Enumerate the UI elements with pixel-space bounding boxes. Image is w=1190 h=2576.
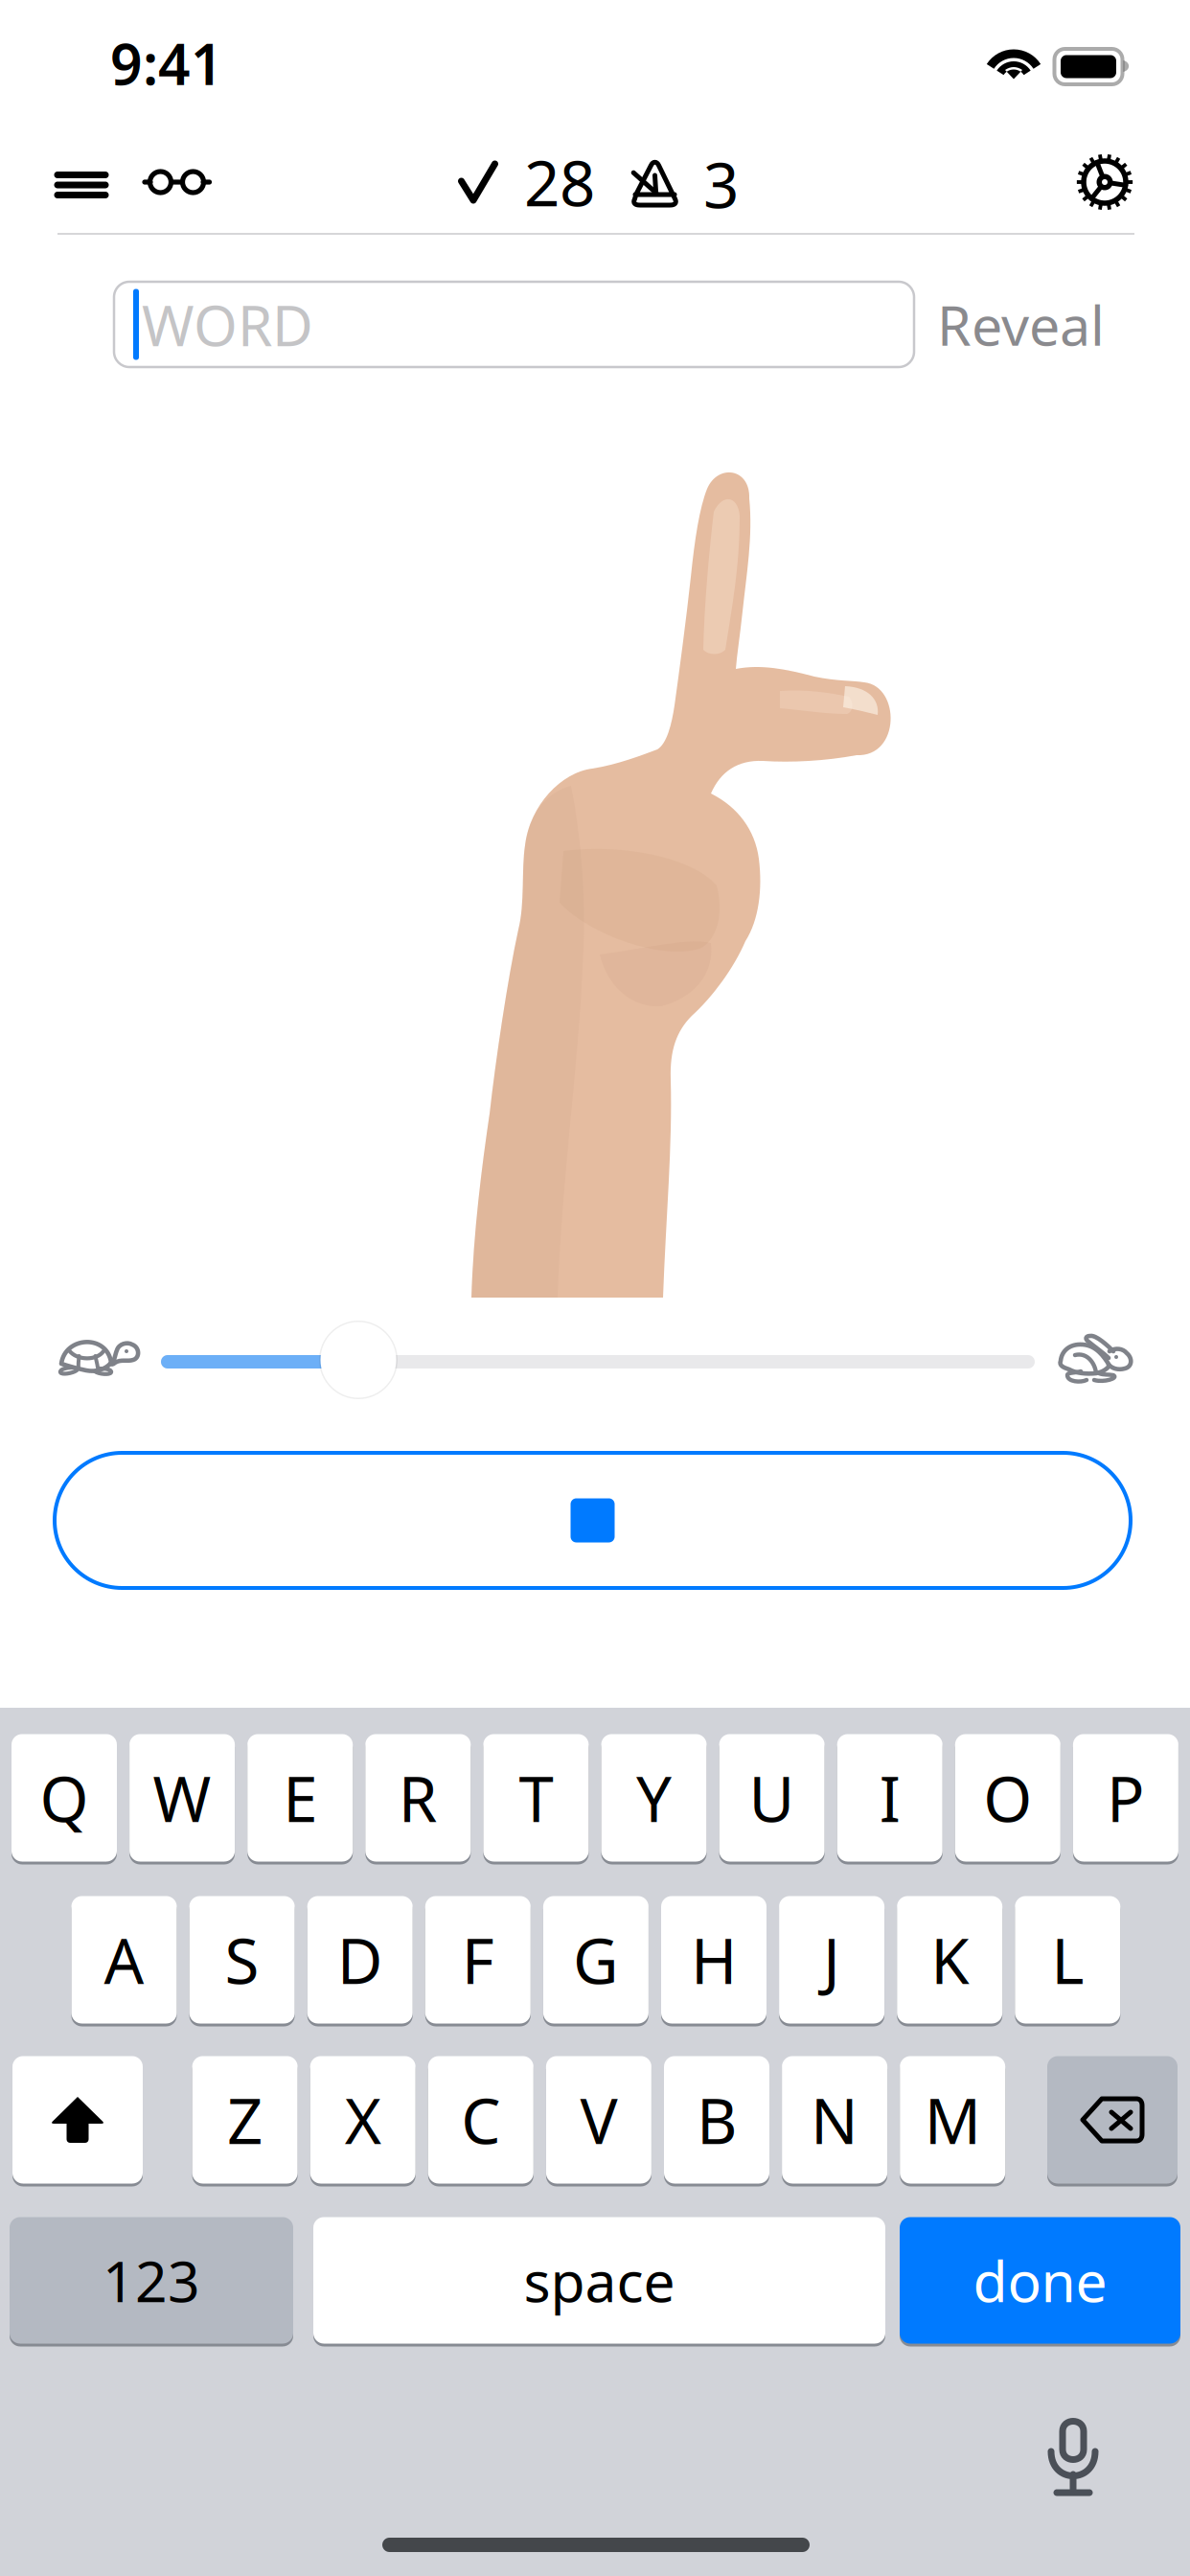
button[interactable]: done xyxy=(900,2216,1180,2345)
staticText: G xyxy=(573,1918,619,2001)
button[interactable]: Dictate xyxy=(1020,2403,1126,2509)
button[interactable]: X xyxy=(310,2055,416,2185)
button[interactable]: Menu xyxy=(39,147,124,223)
staticText: L xyxy=(1051,1918,1084,2001)
staticText: O xyxy=(983,1756,1032,1839)
staticText: W xyxy=(153,1756,211,1839)
button[interactable]: O xyxy=(955,1733,1060,1863)
staticText: M xyxy=(924,2078,981,2161)
staticText: Q xyxy=(40,1756,89,1839)
button[interactable]: A xyxy=(71,1895,177,2025)
button[interactable]: U xyxy=(719,1733,825,1863)
button[interactable]: Reader mode xyxy=(131,144,223,220)
button[interactable]: E xyxy=(247,1733,353,1863)
staticText: N xyxy=(811,2078,859,2161)
staticText: done xyxy=(973,2243,1107,2318)
staticText: T xyxy=(519,1756,553,1839)
button[interactable]: Z xyxy=(192,2055,298,2185)
staticText: D xyxy=(337,1918,383,2001)
button[interactable]: J xyxy=(779,1895,884,2025)
staticText: WORD xyxy=(142,287,313,362)
button[interactable]: space xyxy=(313,2216,885,2345)
staticText: S xyxy=(225,1918,259,2001)
staticText: F xyxy=(462,1918,494,2001)
button[interactable]: Settings xyxy=(1062,144,1148,220)
button[interactable]: H xyxy=(661,1895,767,2025)
button[interactable]: B xyxy=(664,2055,769,2185)
button[interactable]: Shift xyxy=(12,2055,143,2185)
staticText: C xyxy=(461,2078,500,2161)
staticText: Z xyxy=(227,2078,263,2161)
button[interactable]: F xyxy=(425,1895,531,2025)
staticText: I xyxy=(879,1756,900,1839)
staticText: A xyxy=(104,1918,144,2001)
button[interactable]: N xyxy=(782,2055,887,2185)
staticText: space xyxy=(524,2243,675,2318)
staticText: K xyxy=(931,1918,969,2001)
button[interactable]: 3 practising xyxy=(631,146,746,222)
button[interactable]: G xyxy=(543,1895,649,2025)
button[interactable]: K xyxy=(897,1895,1002,2025)
button[interactable]: Stop xyxy=(55,1453,1131,1588)
button[interactable]: L xyxy=(1015,1895,1120,2025)
staticText: J xyxy=(823,1918,840,2001)
staticText: R xyxy=(398,1756,438,1839)
button[interactable]: 28 learned xyxy=(458,144,592,220)
button[interactable]: P xyxy=(1073,1733,1178,1863)
button[interactable]: S xyxy=(189,1895,295,2025)
button[interactable]: D xyxy=(307,1895,413,2025)
button[interactable]: Reveal xyxy=(937,282,1186,367)
button[interactable]: C xyxy=(428,2055,533,2185)
button[interactable]: Delete xyxy=(1047,2055,1178,2185)
button[interactable]: T xyxy=(483,1733,589,1863)
staticText: H xyxy=(691,1918,737,2001)
button[interactable]: Q xyxy=(11,1733,117,1863)
staticText: U xyxy=(749,1756,795,1839)
staticText: 9:41 xyxy=(110,26,223,101)
staticText: V xyxy=(580,2078,617,2161)
button[interactable]: I xyxy=(837,1733,943,1863)
staticText: Reveal xyxy=(937,288,1105,361)
staticText: 123 xyxy=(103,2243,200,2318)
button[interactable]: R xyxy=(365,1733,471,1863)
staticText: X xyxy=(345,2078,381,2161)
staticText: 28 xyxy=(524,140,595,224)
button[interactable]: M xyxy=(900,2055,1005,2185)
button[interactable]: V xyxy=(546,2055,651,2185)
button[interactable]: 123 xyxy=(10,2216,293,2345)
staticText: E xyxy=(283,1756,317,1839)
button[interactable]: W xyxy=(129,1733,235,1863)
staticText: Y xyxy=(636,1756,672,1839)
staticText: B xyxy=(697,2078,737,2161)
staticText: 3 xyxy=(703,142,739,226)
staticText: P xyxy=(1107,1756,1145,1839)
button[interactable]: Y xyxy=(601,1733,707,1863)
